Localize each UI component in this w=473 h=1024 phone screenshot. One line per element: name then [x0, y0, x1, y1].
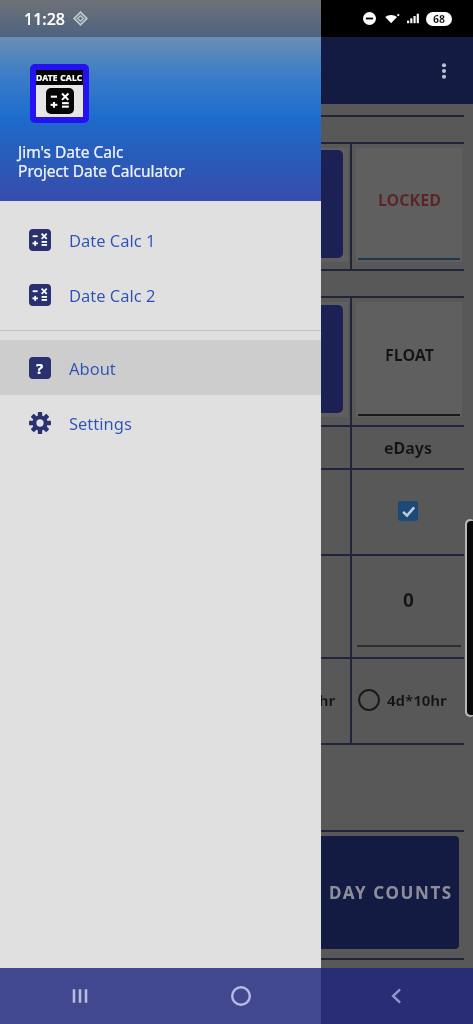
button[interactable]	[280, 150, 343, 258]
staticText: FLOAT	[385, 344, 434, 366]
button[interactable]: Settings	[0, 395, 321, 450]
staticText: 11:28	[24, 8, 65, 30]
button[interactable]: Back	[321, 968, 473, 1024]
button[interactable]: 4d*10hr	[358, 688, 447, 712]
button[interactable]: More options	[428, 55, 460, 87]
button[interactable]: ?	[0, 340, 321, 395]
staticText: eDays	[384, 437, 433, 459]
button[interactable]: FLOAT	[356, 302, 462, 417]
staticText: 0	[403, 587, 414, 613]
staticText: ?	[36, 358, 44, 378]
staticText: Date Calc 2	[69, 284, 156, 306]
button[interactable]: Recents	[0, 968, 160, 1024]
staticText: 4d*10hr	[387, 690, 447, 710]
staticText: Project Date Calculator	[18, 160, 185, 181]
staticText: LOCKED	[378, 189, 441, 211]
staticText: DAY COUNTS	[329, 881, 453, 904]
button[interactable]: Home	[160, 968, 321, 1024]
button[interactable]: LOCKED	[356, 148, 462, 262]
button[interactable]: Checkbox	[398, 501, 418, 521]
button[interactable]: 5d*8hr	[255, 688, 336, 712]
staticText: DATE CALC	[36, 72, 83, 84]
button[interactable]: Date Calc 2	[0, 267, 321, 322]
staticText: Date Calc 1	[69, 229, 156, 251]
staticText: Jim's Date Calc	[18, 141, 124, 162]
button[interactable]	[280, 305, 343, 413]
button[interactable]: DAY COUNTS	[290, 836, 459, 949]
staticText: Settings	[69, 412, 132, 434]
staticText: 68	[433, 12, 446, 26]
staticText: About	[69, 357, 116, 379]
button[interactable]: Date Calc 1	[0, 212, 321, 267]
staticText: 5d*8hr	[284, 690, 336, 710]
